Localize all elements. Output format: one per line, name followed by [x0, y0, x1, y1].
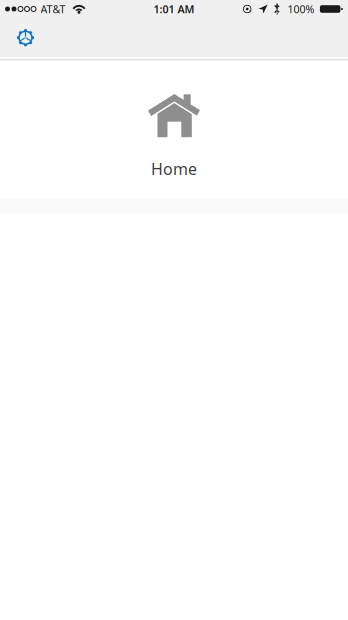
staticText: 1:01 AM: [153, 2, 194, 16]
staticText: Home: [151, 158, 197, 179]
staticText: AT&T: [40, 2, 65, 16]
staticText: 100%: [287, 2, 314, 16]
button[interactable]: Settings: [6, 18, 42, 56]
